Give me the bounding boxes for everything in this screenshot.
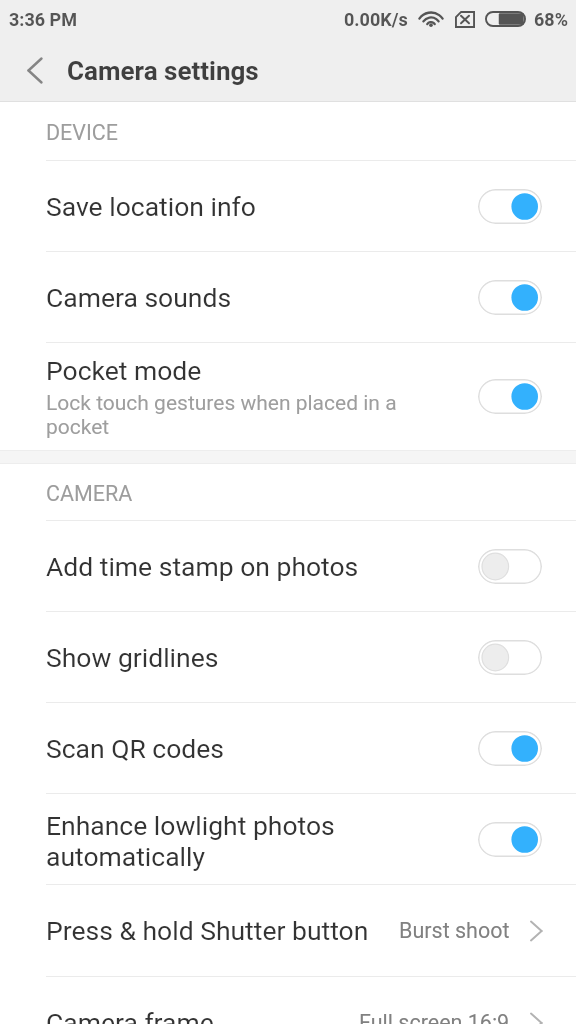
button[interactable]: Switch on bbox=[478, 731, 542, 766]
staticText: Enhance lowlight photos automatically bbox=[46, 810, 335, 872]
button[interactable]: Press & hold Shutter button bbox=[0, 885, 576, 976]
button[interactable]: Switch off bbox=[478, 640, 542, 675]
button[interactable]: Switch off bbox=[478, 549, 542, 584]
staticText: Press & hold Shutter button bbox=[46, 915, 399, 946]
button[interactable]: Switch on bbox=[478, 189, 542, 224]
button[interactable]: Switch on bbox=[478, 822, 542, 857]
button[interactable]: Camera sounds bbox=[0, 252, 576, 342]
staticText: Scan QR codes bbox=[46, 733, 225, 764]
staticText: Full screen 16:9 bbox=[359, 1010, 510, 1024]
staticText: Add time stamp on photos bbox=[46, 551, 359, 582]
staticText: CAMERA bbox=[46, 481, 133, 506]
button[interactable]: Switch on bbox=[478, 280, 542, 315]
button[interactable]: Enhance lowlight photos automatically bbox=[0, 794, 576, 884]
staticText: 3:36 PM bbox=[9, 9, 77, 30]
staticText: Lock touch gestures when placed in a poc… bbox=[46, 391, 397, 439]
staticText: Camera sounds bbox=[46, 282, 232, 313]
staticText: Pocket mode bbox=[46, 355, 202, 386]
staticText: 0.00K/s bbox=[344, 9, 408, 30]
button[interactable]: Back bbox=[12, 48, 57, 93]
staticText: 68% bbox=[534, 9, 568, 30]
button[interactable]: Add time stamp on photos bbox=[0, 521, 576, 611]
button[interactable]: Pocket mode bbox=[0, 343, 576, 450]
staticText: Camera frame bbox=[46, 1007, 359, 1024]
button[interactable]: Camera frame bbox=[0, 977, 576, 1024]
button[interactable]: Save location info bbox=[0, 161, 576, 251]
staticText: Camera settings bbox=[67, 56, 259, 86]
button[interactable]: Show gridlines bbox=[0, 612, 576, 702]
staticText: DEVICE bbox=[46, 120, 119, 145]
button[interactable]: Switch on bbox=[478, 379, 542, 414]
staticText: Show gridlines bbox=[46, 642, 219, 673]
staticText: Burst shoot bbox=[399, 918, 510, 943]
button[interactable]: Scan QR codes bbox=[0, 703, 576, 793]
staticText: Save location info bbox=[46, 191, 256, 222]
